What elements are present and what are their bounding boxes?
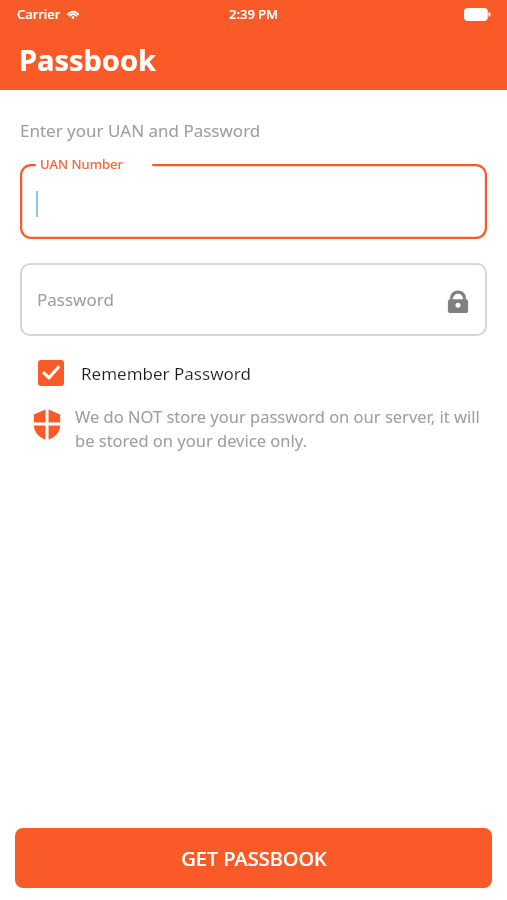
button[interactable]: GET PASSBOOK	[15, 828, 492, 888]
staticText: Enter your UAN and Password	[20, 119, 261, 142]
staticText: Carrier	[17, 5, 61, 23]
staticText: We do NOT store your password on our ser…	[75, 405, 485, 452]
staticText: UAN Number	[40, 155, 124, 173]
staticText: 2:39 PM	[229, 5, 279, 23]
button[interactable]: Password	[20, 263, 487, 336]
other: Show password	[447, 287, 469, 313]
staticText: Remember Password	[81, 362, 251, 385]
button[interactable]: Remember Password	[38, 360, 251, 386]
button[interactable]: UAN Number	[20, 164, 487, 239]
staticText: GET PASSBOOK	[181, 845, 327, 872]
staticText: Password	[37, 288, 114, 311]
staticText: Passbook	[19, 40, 157, 79]
